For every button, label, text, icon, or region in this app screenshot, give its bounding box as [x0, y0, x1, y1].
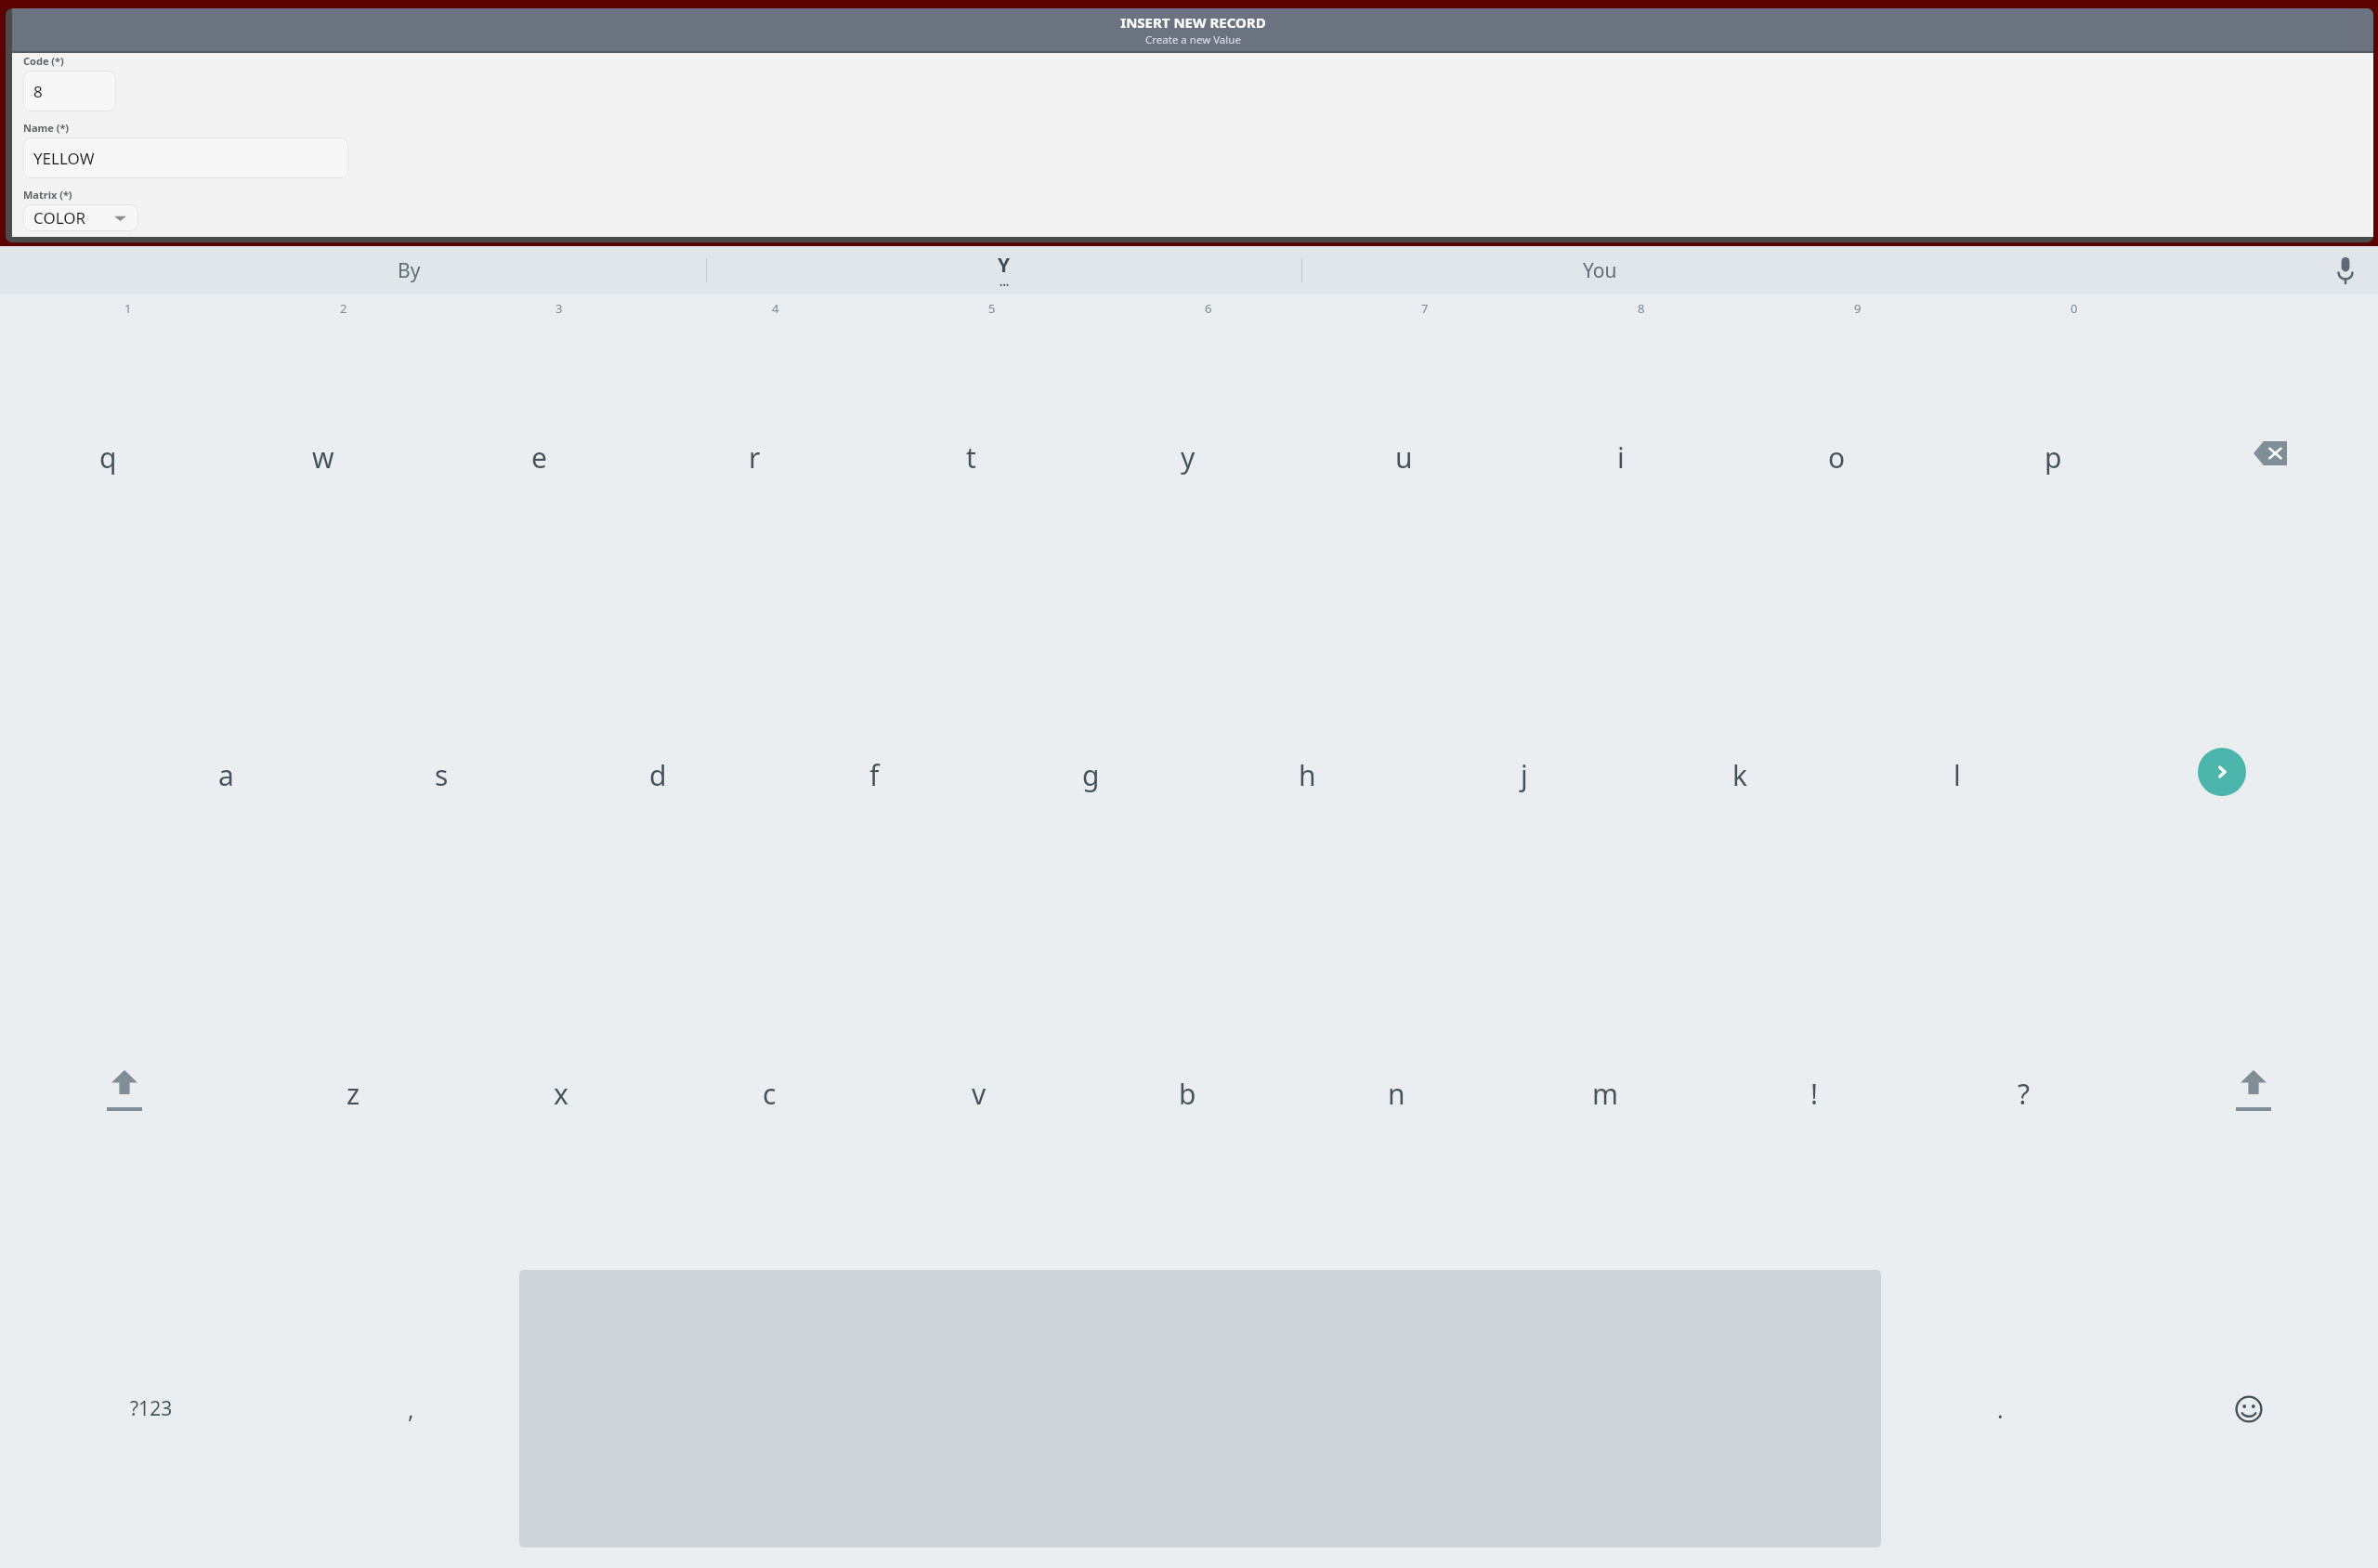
button[interactable]: g	[983, 612, 1199, 931]
button[interactable]: s	[333, 612, 550, 931]
staticText: q	[99, 438, 117, 477]
staticText: 2	[340, 300, 347, 317]
button[interactable]: b	[1083, 931, 1292, 1249]
staticText: p	[2045, 438, 2062, 477]
button[interactable]: c	[665, 931, 874, 1249]
staticText: u	[1395, 438, 1413, 477]
staticText: t	[966, 438, 976, 477]
staticText: c	[763, 1075, 777, 1113]
staticText: w	[312, 438, 334, 477]
button[interactable]: x	[457, 931, 665, 1249]
button[interactable]: 7	[1296, 294, 1512, 612]
staticText: a	[218, 756, 234, 794]
staticText: s	[435, 756, 449, 794]
button[interactable]: n	[1292, 931, 1501, 1249]
staticText: x	[554, 1075, 568, 1113]
staticText: •••	[1000, 279, 1010, 290]
button[interactable]: k	[1632, 612, 1849, 931]
button[interactable]: Shift	[0, 931, 249, 1249]
button[interactable]: Emoji	[2119, 1249, 2378, 1568]
button[interactable]: 8	[1512, 294, 1729, 612]
button[interactable]: 1	[0, 294, 216, 612]
button[interactable]: v	[874, 931, 1083, 1249]
staticText: ?	[2018, 1075, 2031, 1113]
staticText: 4	[772, 300, 779, 317]
button[interactable]: j	[1416, 612, 1632, 931]
staticText: 9	[1854, 300, 1862, 317]
staticText: o	[1828, 438, 1846, 477]
staticText: Name (*)	[23, 121, 70, 135]
button[interactable]: By	[111, 246, 706, 294]
button[interactable]: 6	[1079, 294, 1296, 612]
staticText: 3	[555, 300, 563, 317]
staticText: v	[972, 1075, 986, 1113]
button[interactable]: f	[766, 612, 983, 931]
button[interactable]: YELLOW	[23, 137, 348, 178]
button[interactable]: a	[118, 612, 333, 931]
staticText: d	[649, 756, 667, 794]
button[interactable]: l	[1849, 612, 2065, 931]
button[interactable]: ?123	[0, 1249, 303, 1568]
button[interactable]: 8	[23, 71, 116, 111]
staticText: k	[1732, 756, 1748, 794]
staticText: r	[749, 438, 761, 477]
button[interactable]: 2	[216, 294, 431, 612]
button[interactable]: Shift	[2128, 931, 2378, 1249]
staticText: You	[1583, 257, 1617, 284]
button[interactable]: m	[1501, 931, 1710, 1249]
staticText: Y	[998, 252, 1011, 279]
staticText: z	[346, 1075, 360, 1113]
staticText: i	[1617, 438, 1625, 477]
staticText: YELLOW	[33, 148, 95, 169]
staticText: By	[398, 257, 421, 284]
button[interactable]: z	[249, 931, 457, 1249]
staticText: 1	[124, 300, 132, 317]
button[interactable]: Y	[707, 246, 1301, 294]
staticText: f	[869, 756, 880, 794]
staticText: y	[1181, 438, 1196, 477]
staticText: .	[1997, 1393, 2004, 1425]
staticText: COLOR	[33, 207, 86, 229]
button[interactable]: Backspace	[2162, 294, 2378, 612]
staticText: 7	[1421, 300, 1429, 317]
staticText: ?123	[130, 1395, 173, 1422]
staticText: g	[1082, 756, 1100, 794]
button[interactable]: 0	[1945, 294, 2162, 612]
staticText: 6	[1205, 300, 1212, 317]
button[interactable]: Enter	[2065, 612, 2378, 931]
button[interactable]: ?	[1919, 931, 2128, 1249]
staticText: b	[1179, 1075, 1196, 1113]
staticText: h	[1299, 756, 1316, 794]
button[interactable]: 5	[863, 294, 1079, 612]
staticText: Matrix (*)	[23, 188, 72, 202]
button[interactable]: !	[1710, 931, 1919, 1249]
staticText: m	[1592, 1075, 1619, 1113]
staticText: l	[1953, 756, 1961, 794]
staticText: e	[531, 438, 547, 477]
staticText: !	[1810, 1075, 1819, 1113]
staticText: ,	[408, 1393, 414, 1425]
staticText: Create a new Value	[1145, 33, 1241, 47]
staticText: Code (*)	[23, 54, 64, 68]
button[interactable]: Voice input	[2313, 246, 2378, 294]
staticText: n	[1388, 1075, 1405, 1113]
staticText: 5	[988, 300, 996, 317]
button[interactable]: d	[550, 612, 766, 931]
staticText: 8	[33, 81, 43, 102]
button[interactable]: 9	[1729, 294, 1945, 612]
button[interactable]: You	[1302, 246, 1897, 294]
staticText: 8	[1638, 300, 1645, 317]
button[interactable]: COLOR	[23, 204, 138, 231]
staticText: 0	[2071, 300, 2078, 317]
staticText: INSERT NEW RECORD	[1120, 13, 1266, 32]
staticText: j	[1521, 756, 1528, 794]
button[interactable]: 4	[647, 294, 863, 612]
button[interactable]: h	[1199, 612, 1416, 931]
button[interactable]: 3	[431, 294, 647, 612]
